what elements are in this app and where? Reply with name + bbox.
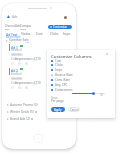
staticText: 50 [100,93,104,97]
button[interactable]: Account [64,16,67,19]
staticText: Conv. Rate [55,78,70,82]
staticText: Ads [12,15,18,19]
staticText: Ad Text [6,32,18,36]
button[interactable]: Overview [4,23,14,29]
button[interactable]: Clicks [51,63,75,67]
staticText: Clicks [50,32,59,36]
staticText: Cost [55,59,62,63]
button[interactable]: Winter Deals (5) [7,109,39,115]
staticText: Status [21,32,31,36]
staticText: Cost: [11,57,18,61]
staticText: Bounce Rate [55,73,73,77]
button[interactable]: Impr. [51,68,75,72]
button[interactable]: Bounce Rate [51,73,75,77]
button[interactable]: Conv. Rate [51,78,75,82]
button[interactable]: Campaigns [19,23,30,29]
staticText: Impr. [63,32,71,36]
staticText: Customize Columns [51,53,92,59]
staticText: Ad 2 [11,68,18,72]
staticText: Ad 1 [11,45,18,49]
staticText: Campaigns [20,24,31,30]
staticText: Customize columns [53,25,72,29]
staticText: Responsive [11,77,23,80]
staticText: Cost [36,32,43,36]
button[interactable]: Customize columns [48,25,72,29]
staticText: Ads [15,24,21,28]
staticText: Summer Sale Campaign (4) [9,38,38,43]
staticText: Clicks [55,63,63,67]
staticText: Cost: [11,81,18,85]
staticText: Enabled [11,48,22,52]
staticText: Per page [51,99,64,103]
staticText: Autumn Promo (3) [10,103,38,107]
button[interactable]: Responsive [11,77,23,80]
button[interactable]: Summer Sale Campaign (4) [6,38,38,43]
staticText: Cancel [70,108,79,112]
button[interactable]: Brand Ads (2) [7,116,39,122]
staticText: Brand Ads (2) [10,117,30,121]
button[interactable]: Cost [51,59,75,63]
staticText: Conversions [55,88,73,92]
staticText: Responsive [11,53,23,56]
staticText: Apply [54,108,62,112]
button[interactable]: Autumn Promo (3) [7,102,39,108]
staticText: Winter Deals (5) [10,110,34,114]
staticText: Impressions: 4,210 [15,57,41,61]
staticText: Rows [51,96,58,100]
staticText: Enabled [11,72,22,76]
staticText: Avg. CPC [55,83,68,87]
button[interactable]: Apply [51,107,65,112]
button[interactable]: Ads [14,23,20,29]
button[interactable]: Close [104,51,109,56]
button[interactable]: Avg. CPC [51,83,75,87]
staticText: Impr. [55,68,63,72]
staticText: Impressions: 4,210 [15,81,41,85]
button[interactable]: Cancel [68,107,80,112]
button[interactable]: Responsive [11,53,23,56]
staticText: Overview [5,24,15,30]
button[interactable]: Conversions [51,88,75,92]
staticText: Ad strength [6,35,21,39]
